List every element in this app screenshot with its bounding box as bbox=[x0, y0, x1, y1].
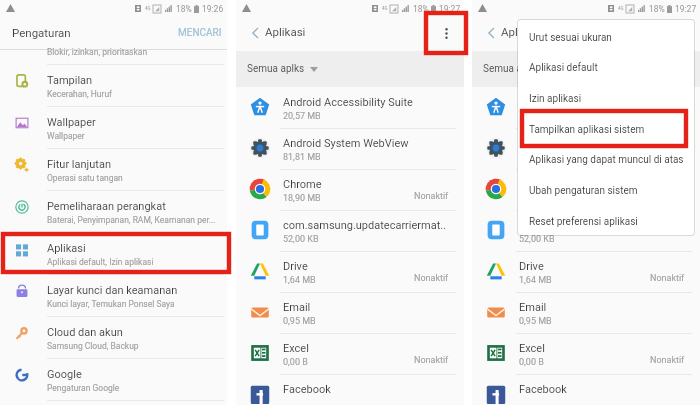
staticText: Semua aplks bbox=[247, 63, 305, 75]
button[interactable]: Android Accessibility Suite bbox=[236, 88, 464, 129]
button[interactable]: Ubah pengaturan sistem bbox=[518, 176, 694, 206]
staticText: 18% bbox=[176, 4, 192, 14]
staticText: Aplikasi yang dapat muncul di atas bbox=[529, 154, 684, 166]
staticText: Chrome bbox=[519, 178, 558, 191]
staticText: Nonaktif bbox=[414, 355, 449, 366]
button[interactable]: Wallpaper bbox=[0, 107, 227, 149]
button[interactable]: Tampilkan aplikasi sistem bbox=[518, 115, 694, 145]
button[interactable]: More options bbox=[668, 19, 696, 47]
button[interactable]: Chrome bbox=[472, 170, 700, 211]
button[interactable]: Semua aplks bbox=[247, 60, 318, 78]
button[interactable]: Drive bbox=[236, 252, 464, 293]
staticText: Pengaturan Google bbox=[47, 383, 120, 393]
button[interactable]: Aplikasi default bbox=[518, 53, 694, 83]
staticText: Facebook bbox=[519, 383, 567, 396]
staticText: Aplikasi default bbox=[529, 62, 598, 74]
button[interactable]: Aplikasi yang dapat muncul di atas bbox=[518, 145, 694, 175]
button[interactable]: Back bbox=[242, 20, 268, 46]
staticText: Tampilan bbox=[47, 74, 93, 87]
staticText: Kunci layar, Temukan Ponsel Saya bbox=[47, 299, 175, 309]
staticText: Reset preferensi aplikasi bbox=[529, 216, 638, 228]
staticText: Drive bbox=[283, 260, 308, 273]
button[interactable]: Email bbox=[236, 293, 464, 334]
button[interactable]: Drive bbox=[472, 252, 700, 293]
staticText: Cloud dan akun bbox=[47, 326, 123, 339]
staticText: 18,90 MB bbox=[283, 193, 321, 204]
staticText: 0,95 MB bbox=[283, 316, 316, 327]
staticText: Aplikasi bbox=[501, 25, 542, 38]
staticText: Aplikasi bbox=[265, 25, 306, 38]
staticText: 20,57 MB bbox=[283, 111, 321, 122]
button[interactable]: Facebook bbox=[236, 375, 464, 405]
staticText: Layar kunci dan keamanan bbox=[47, 284, 178, 297]
staticText: Nonaktif bbox=[414, 273, 449, 284]
staticText: Pemeliharaan perangkat bbox=[47, 200, 166, 213]
staticText: Android System WebView bbox=[519, 137, 645, 150]
button[interactable]: Android System WebView bbox=[236, 129, 464, 170]
staticText: Wallpaper bbox=[47, 131, 85, 141]
staticText: Izin aplikasi bbox=[529, 93, 582, 105]
staticText: Samsung Cloud, Backup bbox=[47, 341, 139, 351]
button[interactable]: Excel bbox=[236, 334, 464, 375]
staticText: 1,64 MB bbox=[283, 275, 316, 286]
button[interactable]: Reset preferensi aplikasi bbox=[518, 207, 694, 235]
staticText: 1,64 MB bbox=[519, 275, 552, 286]
staticText: 81,81 MB bbox=[283, 152, 321, 163]
staticText: 52,00 KB bbox=[283, 234, 319, 245]
button[interactable]: Excel bbox=[472, 334, 700, 375]
staticText: Email bbox=[283, 301, 311, 314]
staticText: Fitur lanjutan bbox=[47, 158, 111, 171]
button[interactable]: Chrome bbox=[236, 170, 464, 211]
staticText: Baterai, Penyimpanan, RAM, Keamanan per.… bbox=[47, 215, 216, 225]
staticText: 4G bbox=[382, 6, 388, 11]
button[interactable]: Email bbox=[472, 293, 700, 334]
button[interactable]: Urut sesuai ukuran bbox=[518, 23, 694, 53]
button[interactable]: Android Accessibility Suite bbox=[472, 88, 700, 129]
staticText: MENCARI bbox=[178, 27, 222, 39]
staticText: Wallpaper bbox=[47, 116, 96, 129]
staticText: 18% bbox=[413, 4, 429, 14]
staticText: 4G bbox=[618, 6, 624, 11]
staticText: Pengaturan bbox=[12, 26, 71, 39]
staticText: Blokir, izinkan, prioritaskan bbox=[47, 47, 148, 57]
staticText: Facebook bbox=[283, 383, 331, 396]
staticText: Nonaktif bbox=[650, 355, 685, 366]
staticText: 19:27 bbox=[675, 4, 697, 14]
staticText: 0,00 B bbox=[519, 357, 544, 368]
button[interactable]: Android System WebView bbox=[472, 129, 700, 170]
button[interactable]: com.samsung.updatecarriermat.. bbox=[472, 211, 700, 252]
staticText: Android System WebView bbox=[283, 137, 409, 150]
button[interactable]: Izin aplikasi bbox=[518, 84, 694, 114]
button[interactable]: Aplikasi bbox=[0, 233, 227, 275]
button[interactable]: Back bbox=[478, 20, 504, 46]
staticText: 20,57 MB bbox=[519, 111, 557, 122]
button[interactable]: MENCARI bbox=[175, 23, 225, 42]
staticText: Operasi satu tangan bbox=[47, 173, 123, 183]
staticText: Urut sesuai ukuran bbox=[529, 32, 612, 44]
staticText: 0,95 MB bbox=[519, 316, 552, 327]
button[interactable]: com.samsung.updatecarriermat.. bbox=[236, 211, 464, 252]
staticText: Android Accessibility Suite bbox=[519, 96, 649, 109]
staticText: 18% bbox=[649, 4, 665, 14]
button[interactable]: More options bbox=[432, 19, 460, 47]
button[interactable]: Semua aplks bbox=[483, 60, 554, 78]
button[interactable]: Tampilan bbox=[0, 65, 227, 107]
staticText: 19:26 bbox=[202, 4, 224, 14]
staticText: Excel bbox=[283, 342, 309, 355]
staticText: 81,81 MB bbox=[519, 152, 557, 163]
staticText: Kecerahan, Huruf bbox=[47, 89, 113, 99]
button[interactable]: Layar kunci dan keamanan bbox=[0, 275, 227, 317]
staticText: Drive bbox=[519, 260, 544, 273]
button[interactable]: Fitur lanjutan bbox=[0, 149, 227, 191]
staticText: com.samsung.updatecarriermat.. bbox=[519, 219, 683, 232]
staticText: Excel bbox=[519, 342, 545, 355]
staticText: Ubah pengaturan sistem bbox=[529, 185, 638, 197]
staticText: Chrome bbox=[283, 178, 322, 191]
button[interactable]: Google bbox=[0, 359, 227, 401]
staticText: Tampilkan aplikasi sistem bbox=[529, 124, 645, 136]
button[interactable]: Facebook bbox=[472, 375, 700, 405]
button[interactable]: Cloud dan akun bbox=[0, 317, 227, 359]
staticText: Nonaktif bbox=[650, 273, 685, 284]
button[interactable]: Pemeliharaan perangkat bbox=[0, 191, 227, 233]
